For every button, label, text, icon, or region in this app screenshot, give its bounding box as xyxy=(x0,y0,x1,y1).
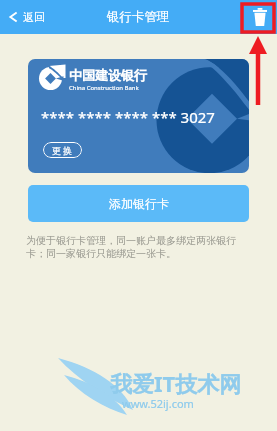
staticText: China Construction Bank xyxy=(69,84,139,92)
button[interactable]: 更 换 xyxy=(43,142,82,158)
staticText: 返回 xyxy=(23,10,45,24)
button[interactable]: 返回 xyxy=(0,0,53,34)
staticText: 为便于银行卡管理，同一账户最多绑定两张银行卡；同一家银行只能绑定一张卡。 xyxy=(26,234,237,260)
staticText: 添加银行卡 xyxy=(109,196,169,211)
staticText: 中国建设银行 xyxy=(69,67,147,83)
staticText: 我爱IT技术网 xyxy=(110,368,242,398)
button[interactable]: 添加银行卡 xyxy=(28,185,249,222)
staticText: www.52ij.com xyxy=(122,396,194,411)
staticText: 银行卡管理 xyxy=(107,9,170,25)
staticText: 更 换 xyxy=(52,144,73,156)
button[interactable]: Delete card xyxy=(246,3,274,31)
button[interactable]: 中国建设银行 xyxy=(28,59,249,173)
staticText: **** **** **** *** 3027 xyxy=(41,107,215,127)
